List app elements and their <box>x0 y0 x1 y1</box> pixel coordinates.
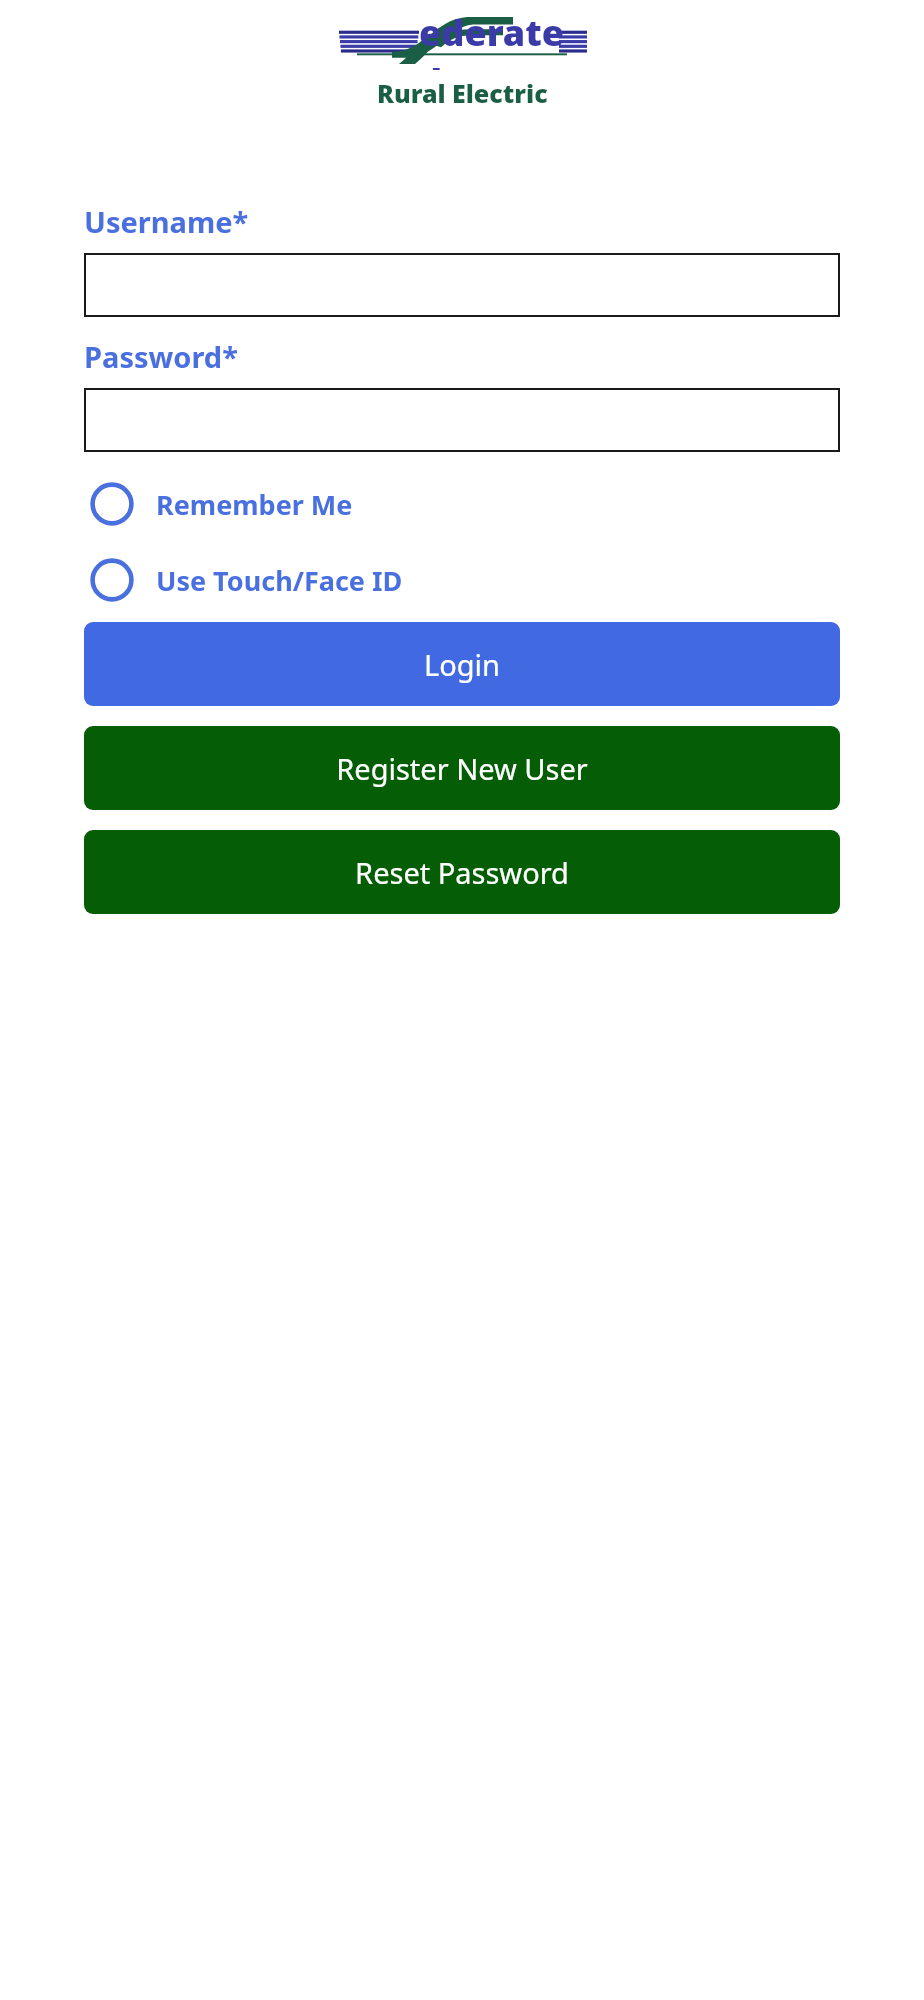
staticText: Username* <box>84 202 249 241</box>
button[interactable]: Login <box>84 622 840 706</box>
button[interactable] <box>84 253 840 317</box>
staticText: Register New User <box>336 749 588 788</box>
button[interactable]: Use Touch/Face ID <box>84 542 840 618</box>
staticText: Use Touch/Face ID <box>156 562 403 599</box>
staticText: Password* <box>84 337 238 376</box>
button[interactable]: Remember Me <box>84 466 840 542</box>
staticText: Rural Electric <box>377 76 548 110</box>
staticText: Reset Password <box>355 853 569 892</box>
button[interactable]: Register New User <box>84 726 840 810</box>
staticText: ederated <box>419 8 587 70</box>
staticText: Login <box>424 645 500 684</box>
button[interactable] <box>84 388 840 452</box>
button[interactable]: Reset Password <box>84 830 840 914</box>
staticText: Remember Me <box>156 486 353 523</box>
